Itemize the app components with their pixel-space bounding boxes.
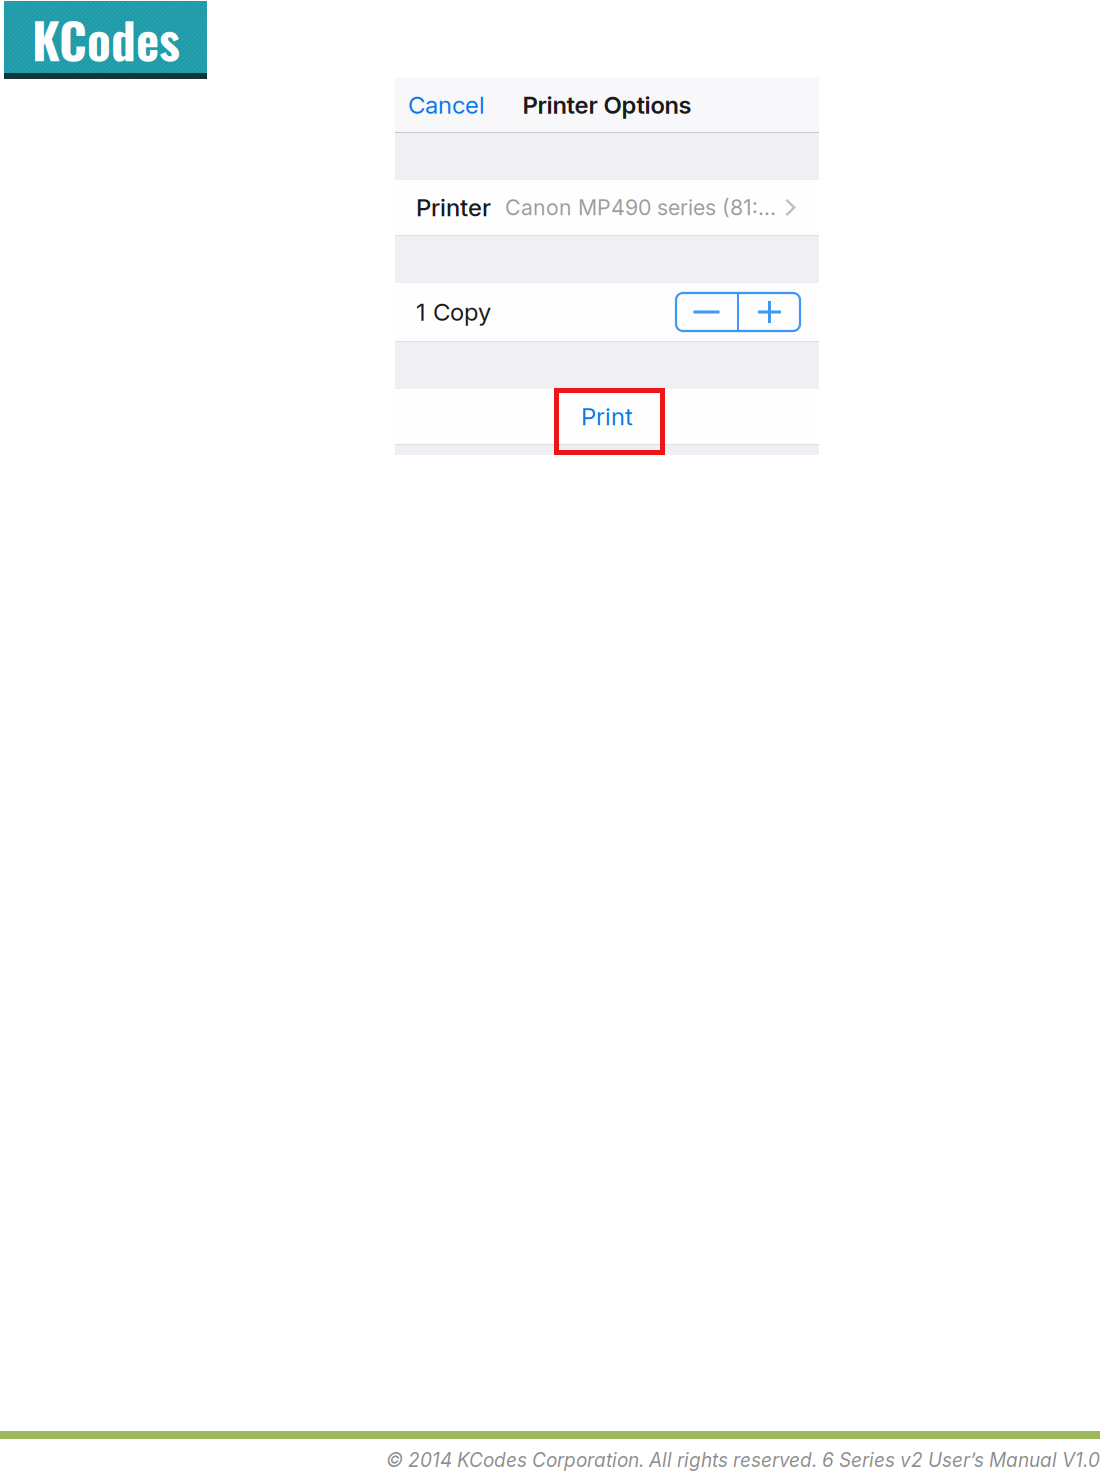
staticText: © 2014 KCodes Corporation. All rights re…: [386, 1448, 1100, 1471]
staticText: Cancel: [408, 90, 485, 119]
button[interactable]: Decrease number of copies: [676, 293, 737, 331]
staticText: Canon MP490 series (81:…: [505, 195, 776, 220]
button[interactable]: Printer: [395, 180, 819, 235]
staticText: Print: [581, 402, 633, 431]
staticText: 1 Copy: [416, 297, 491, 326]
staticText: Printer Options: [522, 90, 691, 119]
button[interactable]: Increase number of copies: [739, 293, 800, 331]
staticText: Printer: [416, 193, 491, 222]
button[interactable]: Cancel: [395, 78, 505, 132]
staticText: KCodes: [32, 2, 180, 75]
button[interactable]: Print: [395, 389, 819, 444]
